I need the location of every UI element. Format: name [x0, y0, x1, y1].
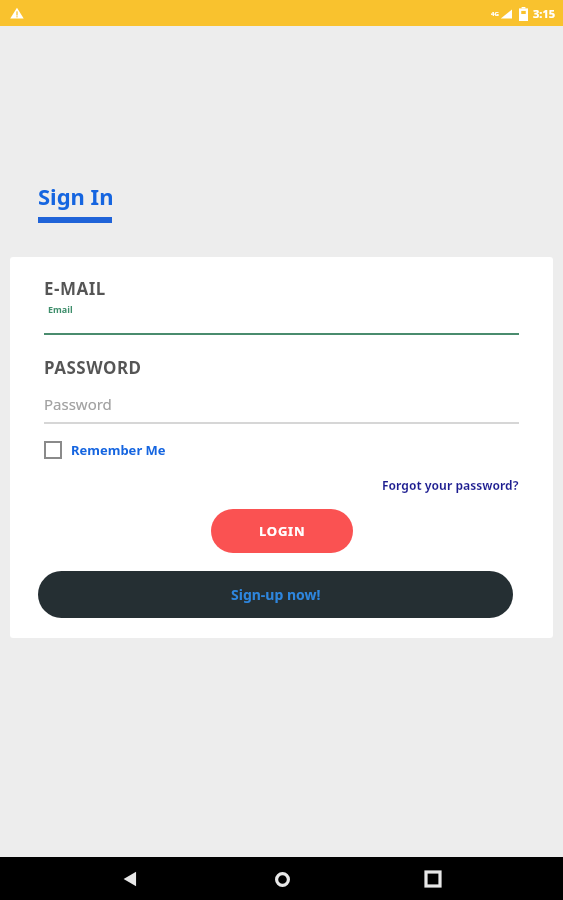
staticText: PASSWORD — [44, 356, 142, 379]
button[interactable]: Home — [262, 859, 302, 899]
button[interactable]: Back — [110, 859, 150, 899]
staticText: Sign In — [38, 181, 114, 211]
staticText: Sign-up now! — [231, 585, 321, 604]
staticText: Remember Me — [71, 441, 166, 459]
staticText: LOGIN — [259, 522, 306, 540]
button[interactable]: Remember Me — [44, 441, 166, 459]
staticText: E-MAIL — [44, 277, 106, 300]
button[interactable]: LOGIN — [211, 509, 353, 553]
button[interactable]: Sign-up now! — [38, 571, 513, 618]
button[interactable]: Forgot your password? — [382, 477, 519, 493]
button[interactable]: Recent apps — [413, 859, 453, 899]
staticText: 4G — [491, 10, 499, 18]
staticText: Password — [44, 394, 112, 414]
staticText: Email — [48, 303, 73, 315]
staticText: 3:15 — [533, 6, 555, 21]
button[interactable]: Sign In — [38, 181, 114, 223]
